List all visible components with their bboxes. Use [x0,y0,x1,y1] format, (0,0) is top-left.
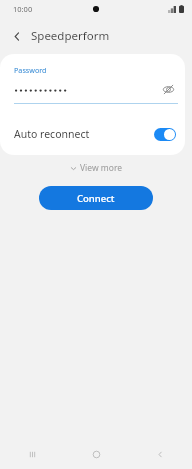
button[interactable]: Home [64,439,128,469]
staticText: View more [80,162,123,174]
button[interactable]: Show password [159,81,177,98]
button[interactable]: Connect [39,186,153,210]
staticText: Password [14,65,47,75]
staticText: Auto reconnect [14,127,90,141]
button[interactable]: View more [64,159,129,177]
button[interactable]: Auto reconnect [0,121,185,147]
button[interactable]: Auto reconnect toggle [154,128,176,141]
button[interactable]: Recents [0,439,64,469]
staticText: Speedperform [31,28,110,44]
staticText: 10:00 [13,4,33,14]
staticText: Connect [77,192,115,205]
button[interactable]: Back [7,26,27,46]
